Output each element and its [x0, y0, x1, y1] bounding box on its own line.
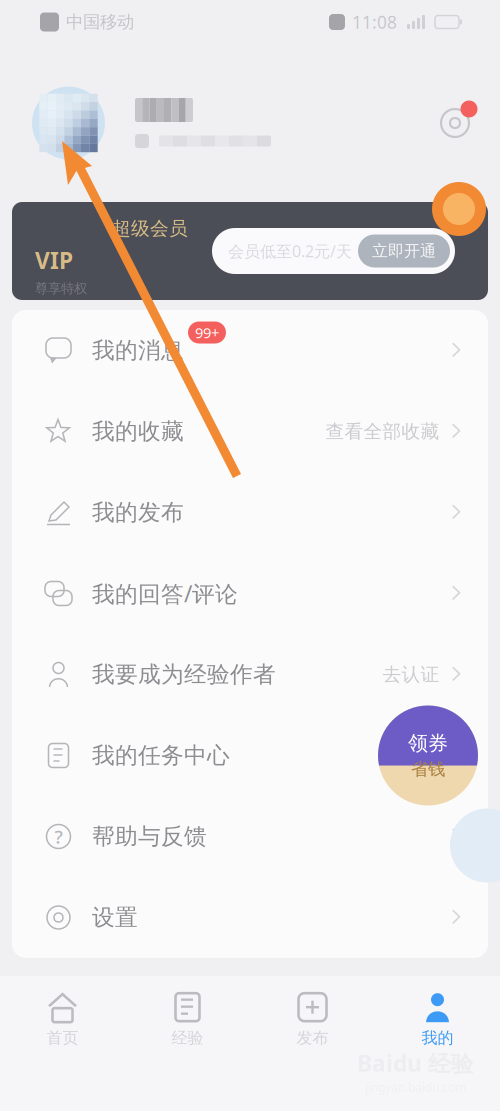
- staticText: Baidu 经验: [357, 1048, 474, 1078]
- staticText: VIP: [35, 245, 73, 275]
- button[interactable]: 我要成为经验作者: [12, 634, 488, 715]
- staticText: 中国移动: [66, 11, 134, 33]
- staticText: 99+: [195, 323, 219, 342]
- staticText: 我的任务中心: [92, 742, 230, 769]
- button[interactable]: 发布: [250, 976, 375, 1060]
- staticText: 发布: [296, 1028, 328, 1048]
- button[interactable]: 我的发布: [12, 472, 488, 553]
- staticText: 帮助与反馈: [92, 823, 207, 850]
- staticText: 省钱: [411, 759, 445, 780]
- staticText: 我的消息: [92, 337, 184, 364]
- button[interactable]: 我的任务中心: [12, 715, 488, 796]
- button[interactable]: 我的消息: [12, 310, 488, 391]
- staticText: 我的收藏: [92, 418, 184, 445]
- staticText: 领券: [408, 731, 448, 756]
- button[interactable]: Coupon promotion: [378, 705, 478, 805]
- staticText: 首页: [46, 1028, 78, 1048]
- staticText: 会员低至0.2元/天: [228, 240, 352, 262]
- staticText: 超级会员: [112, 217, 188, 240]
- button[interactable]: 我的收藏: [12, 391, 488, 472]
- staticText: 经验: [171, 1028, 203, 1048]
- button[interactable]: 经验: [125, 976, 250, 1060]
- staticText: 去认证: [382, 663, 439, 686]
- staticText: 11:08: [352, 10, 397, 33]
- button[interactable]: Profile photo: [32, 86, 105, 159]
- staticText: 我要成为经验作者: [92, 661, 276, 688]
- staticText: 我的回答/评论: [92, 578, 238, 608]
- staticText: 查看全部收藏: [325, 420, 439, 443]
- staticText: 我的: [421, 1028, 453, 1048]
- button[interactable]: 我的回答/评论: [12, 553, 488, 634]
- staticText: 设置: [92, 904, 138, 931]
- staticText: 我的发布: [92, 499, 184, 526]
- button[interactable]: 首页: [0, 976, 125, 1060]
- staticText: ?: [54, 824, 62, 849]
- button[interactable]: [12, 202, 488, 300]
- staticText: 立即开通: [372, 241, 436, 261]
- button[interactable]: ?: [12, 796, 488, 877]
- button[interactable]: 设置: [12, 877, 488, 958]
- button[interactable]: Settings: [432, 100, 478, 146]
- button[interactable]: 我的: [375, 976, 500, 1060]
- staticText: 尊享特权: [35, 280, 87, 297]
- button[interactable]: 会员低至0.2元/天: [212, 228, 455, 274]
